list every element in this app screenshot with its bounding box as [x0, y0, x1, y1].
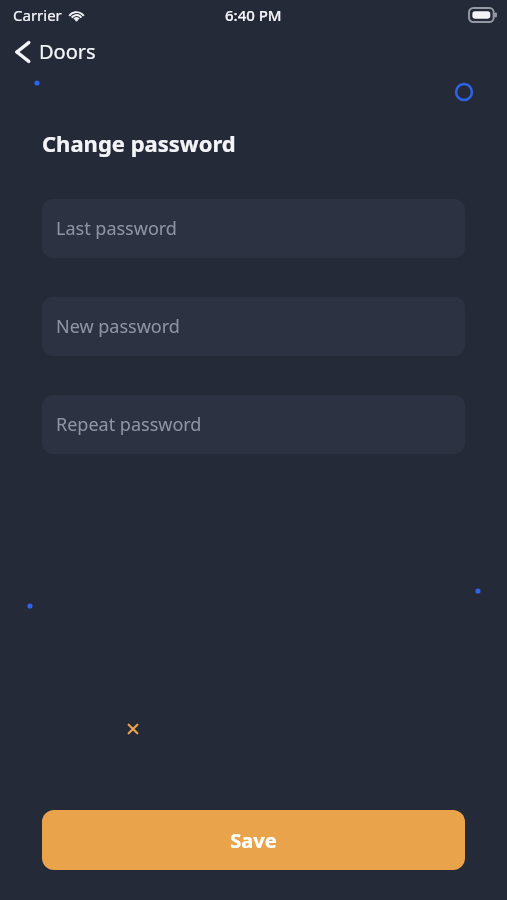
staticText: 6:40 PM [225, 5, 282, 25]
staticText: Save [230, 827, 277, 854]
staticText: Last password [56, 216, 177, 241]
button[interactable]: Back to Doors [14, 38, 104, 65]
staticText: Repeat password [56, 412, 202, 437]
staticText: New password [56, 314, 180, 339]
staticText: Carrier [13, 5, 62, 25]
button[interactable]: Last password [42, 199, 465, 258]
button[interactable]: Save [42, 810, 465, 870]
button[interactable]: Repeat password [42, 395, 465, 454]
staticText: Change password [42, 128, 236, 158]
button[interactable]: New password [42, 297, 465, 356]
staticText: Doors [39, 38, 96, 65]
